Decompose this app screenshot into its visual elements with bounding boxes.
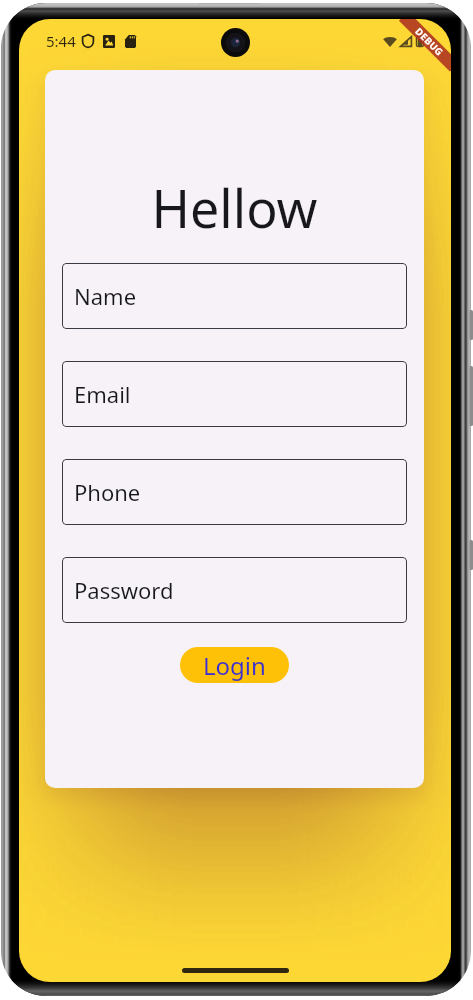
button[interactable]: Phone: [62, 459, 407, 525]
staticText: Phone: [74, 477, 141, 507]
staticText: Email: [74, 379, 131, 409]
button[interactable]: Email: [62, 361, 407, 427]
button[interactable]: Password: [62, 557, 407, 623]
staticText: DEBUG: [412, 25, 446, 59]
staticText: Name: [74, 281, 137, 311]
button[interactable]: Name: [62, 263, 407, 329]
staticText: 5:44: [46, 31, 76, 51]
staticText: Password: [74, 575, 174, 605]
staticText: Login: [203, 649, 266, 682]
staticText: Hellow: [62, 172, 407, 243]
button[interactable]: Login: [180, 647, 289, 683]
